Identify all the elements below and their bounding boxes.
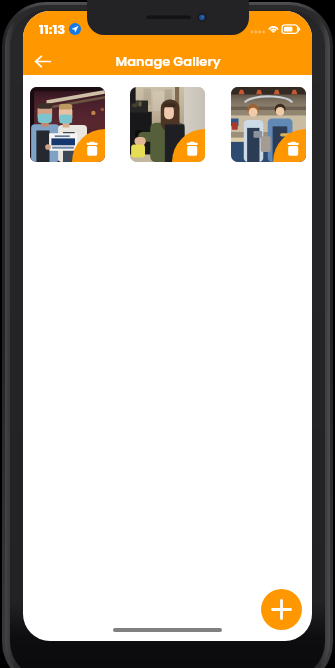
button[interactable]: Delete photo	[130, 87, 205, 162]
staticText: 11:13	[39, 20, 66, 38]
button[interactable]: Delete photo	[231, 87, 306, 162]
staticText: Manage Gallery	[115, 52, 221, 70]
button[interactable]: Delete photo	[30, 87, 105, 162]
button[interactable]: Add photo	[261, 589, 302, 630]
button[interactable]: Back	[28, 47, 56, 75]
